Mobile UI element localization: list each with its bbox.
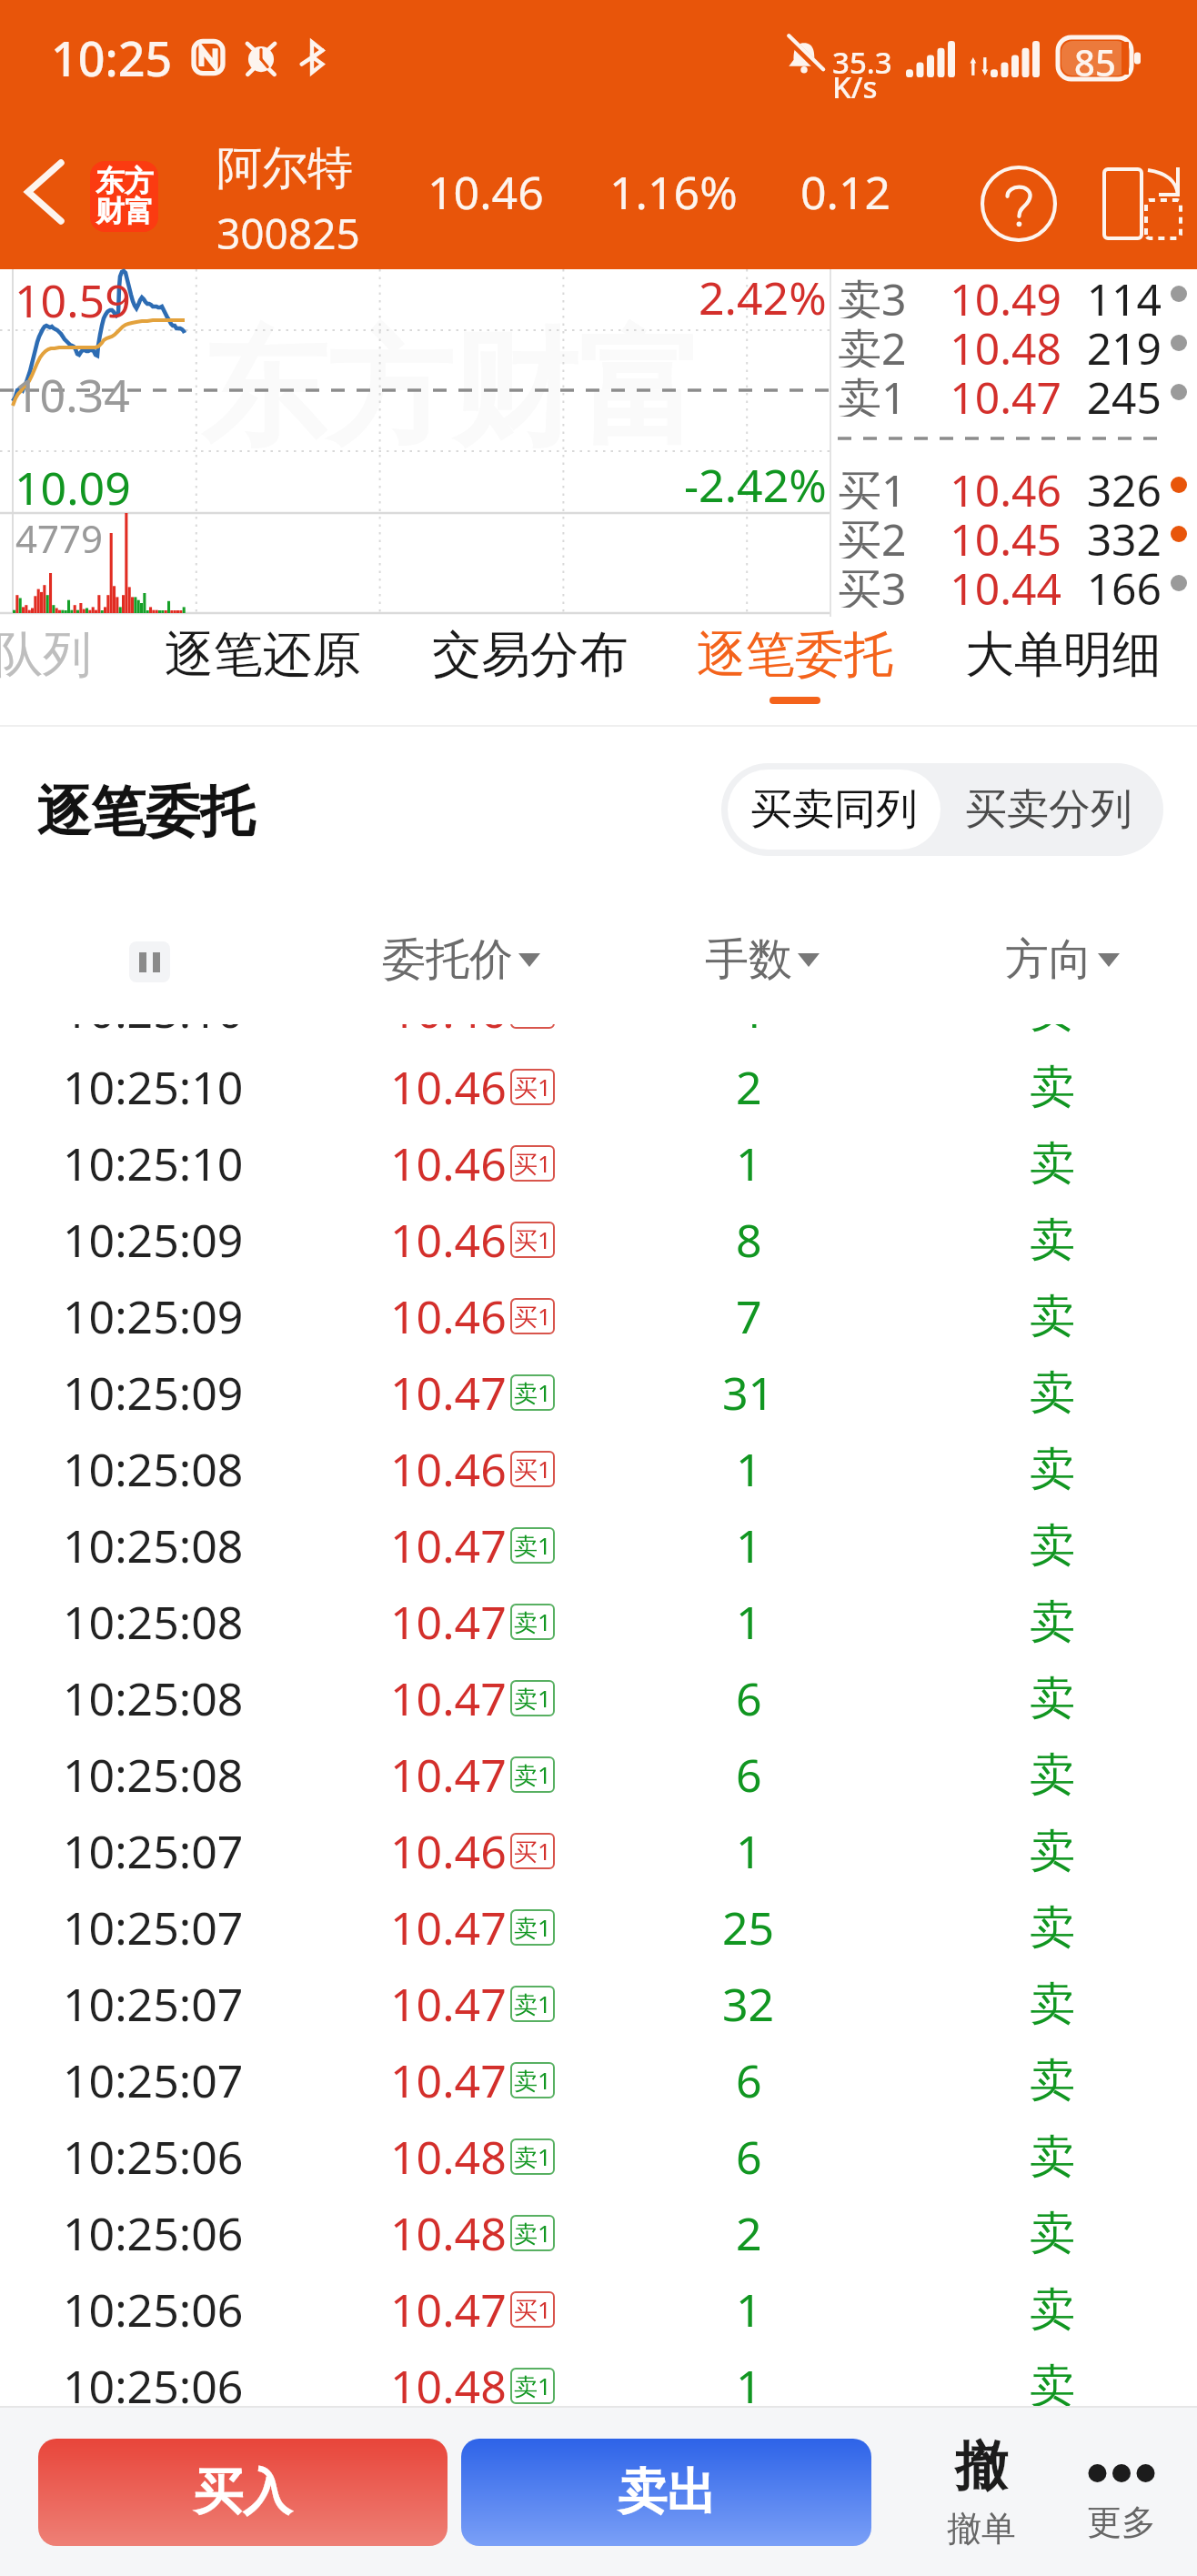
button[interactable]: 10:25:10 xyxy=(0,1125,1197,1202)
staticText: 4779 xyxy=(15,512,104,564)
staticText: 卖1 xyxy=(514,1682,551,1715)
staticText: 卖 xyxy=(1030,1288,1075,1345)
button[interactable]: 买1 xyxy=(838,460,1187,509)
button[interactable]: 10:25:10 xyxy=(0,1024,1197,1049)
button[interactable]: 买卖分列 xyxy=(940,770,1157,850)
button[interactable]: 大单明细 xyxy=(940,617,1186,727)
staticText: 85 xyxy=(1074,37,1116,79)
staticText: 1 xyxy=(736,1591,762,1653)
staticText: 10.47 xyxy=(390,1667,507,1729)
button[interactable]: 卖1 xyxy=(838,367,1187,417)
button[interactable]: 10:25:06 xyxy=(0,2348,1197,2406)
button[interactable]: 10:25:06 xyxy=(0,2118,1197,2195)
button[interactable]: Rotate screen xyxy=(1079,153,1184,255)
staticText: 买1 xyxy=(514,1071,551,1103)
button[interactable]: 买入 xyxy=(38,2439,448,2546)
button[interactable]: 买2 xyxy=(838,509,1187,558)
button[interactable]: 交易分布 xyxy=(407,617,653,727)
staticText: 委托价 xyxy=(382,932,513,987)
button[interactable]: 10:25:08 xyxy=(0,1660,1197,1736)
button[interactable]: 方向 xyxy=(926,895,1197,1024)
button[interactable]: 手数 xyxy=(626,895,899,1024)
staticText: 交易分布 xyxy=(432,624,629,686)
button[interactable]: 10:25:07 xyxy=(0,1813,1197,1889)
staticText: 逐笔还原 xyxy=(165,624,361,686)
staticText: 卖 xyxy=(1030,1212,1075,1269)
button[interactable]: 10:25:09 xyxy=(0,1354,1197,1431)
button[interactable]: 10:25:07 xyxy=(0,1966,1197,2042)
staticText: 卖2 xyxy=(838,318,934,367)
button[interactable]: 10:25:08 xyxy=(0,1584,1197,1660)
staticText: 10.46 xyxy=(427,161,544,223)
staticText: 卖 xyxy=(1030,2281,1075,2339)
staticText: 买1 xyxy=(514,1835,551,1867)
staticText: 买1 xyxy=(514,1147,551,1180)
button[interactable]: 10:25:07 xyxy=(0,1889,1197,1966)
button[interactable]: 逐笔委托 xyxy=(672,617,918,727)
button[interactable]: Back xyxy=(0,115,91,269)
button[interactable]: 卖出 xyxy=(461,2439,871,2546)
staticText: 卖 xyxy=(1030,1024,1075,1040)
button[interactable]: 委托价 xyxy=(325,895,598,1024)
staticText: 1 xyxy=(736,1820,762,1882)
button[interactable]: 10:25:06 xyxy=(0,2271,1197,2348)
staticText: 10:25:06 xyxy=(63,2355,244,2406)
button[interactable]: 队列 xyxy=(0,617,166,727)
button[interactable]: 逐笔还原 xyxy=(140,617,386,727)
staticText: 阿尔特 xyxy=(216,140,353,197)
button[interactable]: 10:25:09 xyxy=(0,1278,1197,1354)
staticText: 10:25:06 xyxy=(63,2202,244,2264)
staticText: 卖 xyxy=(1030,1059,1075,1116)
staticText: 10.48 xyxy=(390,2126,507,2188)
staticText: 10.47 xyxy=(390,1744,507,1806)
staticText: 10:25:08 xyxy=(63,1744,244,1806)
staticText: 2.42% xyxy=(699,267,827,328)
staticText: 245 xyxy=(1061,367,1162,417)
button[interactable]: 10:25:09 xyxy=(0,1202,1197,1278)
button[interactable]: 卖2 xyxy=(838,318,1187,367)
staticText: 10.46 xyxy=(390,1024,507,1041)
button[interactable]: 10:25:06 xyxy=(0,2195,1197,2271)
staticText: 买卖分列 xyxy=(965,783,1132,836)
staticText: 10.47 xyxy=(390,2279,507,2340)
button[interactable]: 买3 xyxy=(838,558,1187,608)
staticText: 10.46 xyxy=(390,1056,507,1118)
button[interactable]: 撤 xyxy=(909,2408,1054,2576)
staticText: 10:25:10 xyxy=(63,1132,244,1194)
staticText: 10:25:06 xyxy=(63,2279,244,2340)
staticText: 10.46 xyxy=(390,1820,507,1882)
button[interactable]: 10:25:10 xyxy=(0,1049,1197,1125)
staticText: 25 xyxy=(722,1897,775,1958)
button[interactable]: 10:25:08 xyxy=(0,1507,1197,1584)
staticText: 东方财富 xyxy=(201,311,703,469)
staticText: 卖1 xyxy=(514,2140,551,2173)
staticText: 买2 xyxy=(838,509,934,558)
staticText: 买卖同列 xyxy=(750,783,918,836)
staticText: 219 xyxy=(1061,318,1162,367)
staticText: 6 xyxy=(736,2049,762,2111)
staticText: 卖1 xyxy=(514,2370,551,2402)
staticText: 35.3 K/s xyxy=(832,42,892,107)
staticText: 卖1 xyxy=(838,367,934,417)
staticText: 卖 xyxy=(1030,2358,1075,2406)
staticText: 332 xyxy=(1061,509,1162,558)
staticText: 1 xyxy=(736,1132,762,1194)
button[interactable]: 10:25:08 xyxy=(0,1736,1197,1813)
staticText: 买1 xyxy=(514,1024,551,1027)
button[interactable]: 买卖同列 xyxy=(728,770,940,850)
staticText: 10:25:08 xyxy=(63,1514,244,1576)
staticText: 买1 xyxy=(514,1223,551,1256)
staticText: 10.46 xyxy=(390,1132,507,1194)
staticText: 10.46 xyxy=(390,1285,507,1347)
staticText: 卖1 xyxy=(514,2064,551,2097)
button[interactable]: Help xyxy=(968,153,1070,255)
button[interactable]: 10:25:07 xyxy=(0,2042,1197,2118)
button[interactable]: 卖3 xyxy=(838,269,1187,318)
staticText: 1 xyxy=(736,1438,762,1500)
staticText: 卖1 xyxy=(514,1758,551,1791)
button[interactable]: 10:25:08 xyxy=(0,1431,1197,1507)
button[interactable]: 更多 xyxy=(1049,2408,1194,2576)
staticText: 10.47 xyxy=(934,367,1061,417)
staticText: 10.49 xyxy=(934,269,1061,318)
button[interactable]: Pause xyxy=(129,941,170,982)
